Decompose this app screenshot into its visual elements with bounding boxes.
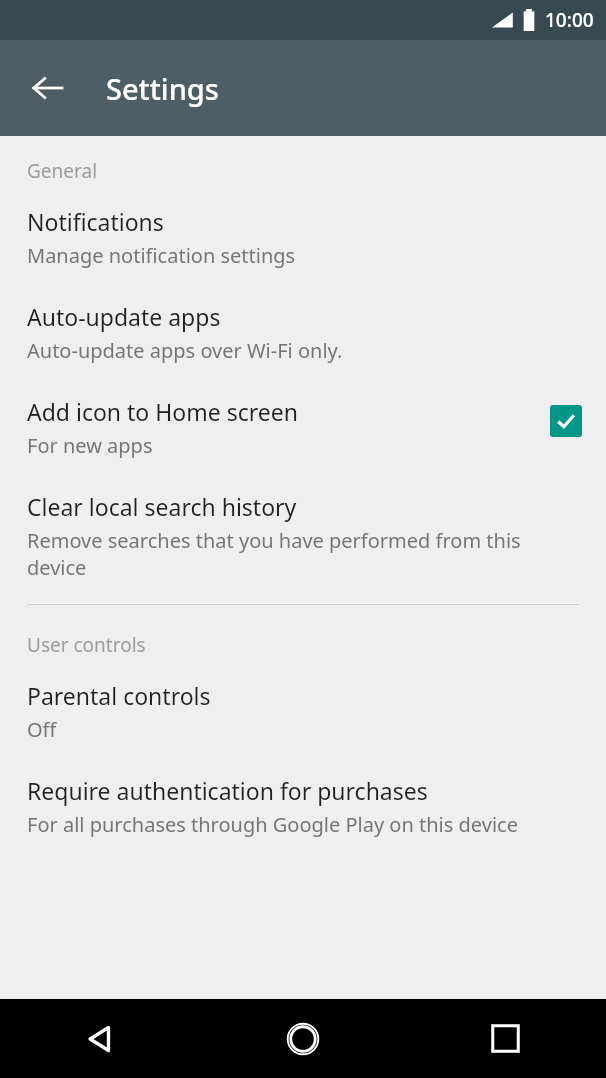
staticText: For all purchases through Google Play on… [27, 811, 518, 838]
button[interactable]: Back [16, 56, 80, 120]
staticText: Add icon to Home screen [27, 396, 298, 427]
staticText: Parental controls [27, 680, 211, 711]
staticText: User controls [27, 632, 146, 658]
staticText: Manage notification settings [27, 242, 296, 269]
button[interactable]: Home [202, 999, 404, 1078]
staticText: Clear local search history [27, 491, 297, 522]
staticText: Auto-update apps [27, 301, 221, 332]
staticText: Remove searches that you have performed … [27, 527, 582, 581]
button[interactable]: Auto-update apps [0, 269, 606, 364]
staticText: General [27, 158, 98, 184]
staticText: 10:00 [545, 7, 594, 33]
staticText: Notifications [27, 206, 164, 237]
button[interactable]: Notifications [0, 184, 606, 269]
button[interactable]: Parental controls [0, 658, 606, 743]
button[interactable]: Clear local search history [0, 459, 606, 581]
button[interactable]: Add icon to Home screen [0, 364, 606, 459]
staticText: Require authentication for purchases [27, 775, 428, 806]
staticText: Settings [106, 69, 219, 108]
button[interactable]: Back [0, 999, 202, 1078]
staticText: For new apps [27, 432, 153, 459]
button[interactable]: Add icon to Home screen checkbox [550, 405, 582, 437]
button[interactable]: Recent apps [404, 999, 606, 1078]
staticText: Off [27, 716, 57, 743]
button[interactable]: Require authentication for purchases [0, 743, 606, 838]
staticText: Auto-update apps over Wi-Fi only. [27, 337, 343, 364]
